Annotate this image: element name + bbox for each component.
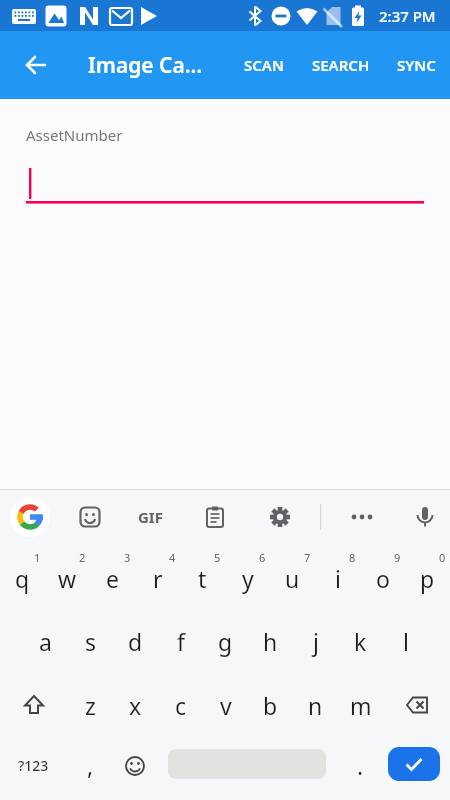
button[interactable]: w — [45, 546, 90, 610]
staticText: t — [198, 563, 207, 594]
staticText: , — [87, 750, 94, 781]
staticText: 6 — [259, 550, 266, 565]
staticText: g — [218, 626, 233, 657]
button[interactable]: k — [338, 609, 383, 673]
staticText: k — [354, 626, 367, 657]
button[interactable]: b — [248, 673, 293, 737]
button[interactable]: g — [203, 609, 248, 673]
button[interactable] — [403, 495, 447, 539]
staticText: 5 — [214, 550, 221, 565]
button[interactable]: u — [270, 546, 315, 610]
staticText: 2:37 PM — [379, 6, 436, 26]
button[interactable]: f — [158, 609, 203, 673]
button[interactable]: c — [158, 673, 203, 737]
button[interactable]: z — [68, 673, 113, 737]
button[interactable] — [340, 495, 384, 539]
staticText: x — [129, 690, 142, 721]
staticText: 8 — [349, 550, 356, 565]
button[interactable]: a — [23, 609, 68, 673]
button[interactable]: t — [180, 546, 225, 610]
staticText: z — [85, 690, 96, 721]
staticText: r — [153, 563, 163, 594]
staticText: GIF — [138, 507, 163, 527]
staticText: s — [85, 626, 97, 657]
staticText: w — [58, 563, 77, 594]
button[interactable]: y — [225, 546, 270, 610]
button[interactable]: d — [113, 609, 158, 673]
staticText: 9 — [394, 550, 401, 565]
button[interactable]: GIF — [128, 495, 172, 539]
button[interactable]: o — [360, 546, 405, 610]
staticText: j — [313, 626, 319, 657]
button[interactable]: q — [0, 546, 45, 610]
staticText: 7 — [304, 550, 311, 565]
staticText: 3 — [124, 550, 131, 565]
staticText: f — [177, 626, 185, 657]
staticText: . — [357, 750, 364, 781]
staticText: i — [335, 563, 341, 594]
button[interactable]: n — [293, 673, 338, 737]
button[interactable]: . — [338, 733, 383, 797]
button[interactable]: SEARCH — [299, 47, 383, 83]
staticText: p — [420, 563, 435, 594]
staticText: SYNC — [397, 55, 436, 75]
button[interactable]: l — [383, 609, 428, 673]
staticText: 2 — [79, 550, 86, 565]
staticText: u — [285, 563, 300, 594]
button[interactable]: i — [315, 546, 360, 610]
staticText: e — [106, 563, 119, 594]
staticText: 4 — [169, 550, 176, 565]
button[interactable] — [112, 734, 157, 797]
button[interactable] — [193, 495, 237, 539]
staticText: b — [263, 690, 278, 721]
staticText: m — [350, 690, 372, 721]
button[interactable]: ?123 — [0, 734, 67, 797]
staticText: l — [403, 626, 409, 657]
staticText: n — [308, 690, 323, 721]
staticText: h — [263, 626, 278, 657]
button[interactable] — [68, 495, 112, 539]
button[interactable] — [258, 495, 302, 539]
button[interactable] — [10, 497, 50, 537]
button[interactable] — [12, 41, 60, 89]
button[interactable]: , — [68, 733, 113, 797]
button[interactable]: p — [405, 546, 450, 610]
staticText: a — [39, 626, 52, 657]
button[interactable]: x — [113, 673, 158, 737]
staticText: d — [128, 626, 143, 657]
button[interactable]: m — [338, 673, 383, 737]
staticText: 1 — [34, 550, 41, 565]
button[interactable] — [383, 673, 450, 737]
button[interactable] — [0, 673, 67, 737]
button[interactable]: s — [68, 609, 113, 673]
button[interactable]: h — [248, 609, 293, 673]
staticText: SEARCH — [312, 55, 370, 75]
button[interactable]: r — [135, 546, 180, 610]
button[interactable] — [388, 747, 440, 781]
staticText: c — [175, 690, 187, 721]
button[interactable]: SYNC — [384, 47, 448, 83]
button[interactable]: j — [293, 609, 338, 673]
staticText: SCAN — [244, 55, 284, 75]
button[interactable]: SCAN — [228, 47, 300, 83]
button[interactable]: v — [203, 673, 248, 737]
staticText: y — [242, 563, 254, 594]
staticText: Image Ca… — [88, 51, 203, 80]
button[interactable]: e — [90, 546, 135, 610]
staticText: o — [376, 563, 390, 594]
staticText: ?123 — [18, 756, 49, 775]
staticText: q — [15, 563, 30, 594]
staticText: v — [220, 690, 232, 721]
staticText: 0 — [439, 550, 446, 565]
staticText: AssetNumber — [26, 125, 123, 145]
